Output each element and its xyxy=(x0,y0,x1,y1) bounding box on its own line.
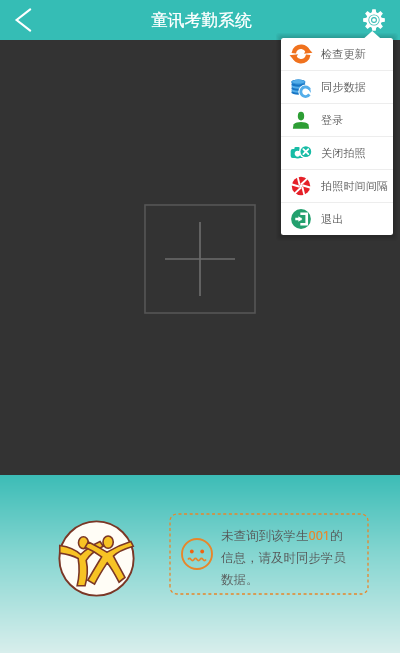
button[interactable]: Back xyxy=(0,0,46,40)
staticText: 拍照时间间隔 xyxy=(321,179,389,193)
staticText: 同步数据 xyxy=(321,80,366,94)
staticText: 退出 xyxy=(321,212,344,226)
button[interactable]: 检查更新 xyxy=(281,38,393,71)
button[interactable]: 拍照时间间隔 xyxy=(281,170,393,203)
staticText: 关闭拍照 xyxy=(321,146,366,160)
staticText: 登录 xyxy=(321,113,344,127)
button[interactable]: 关闭拍照 xyxy=(281,137,393,170)
button[interactable]: 退出 xyxy=(281,203,393,235)
button[interactable]: 未查询到该学生001的信息，请及时同步学员数据。 xyxy=(170,514,368,594)
staticText: 检查更新 xyxy=(321,47,366,61)
button[interactable]: Focus camera xyxy=(145,205,255,313)
button[interactable]: 同步数据 xyxy=(281,71,393,104)
button[interactable]: Settings xyxy=(348,0,400,40)
staticText: 未查询到该学生001的信息，请及时同步学员数据。 xyxy=(221,527,352,588)
button[interactable]: 登录 xyxy=(281,104,393,137)
staticText: 童讯考勤系统 xyxy=(151,10,252,31)
